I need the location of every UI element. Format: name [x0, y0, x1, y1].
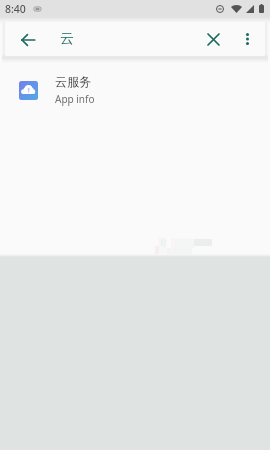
button[interactable]: 云服务	[0, 69, 270, 111]
button[interactable]: More options	[233, 25, 261, 53]
button[interactable]: Back	[14, 26, 42, 54]
staticText: App info	[55, 92, 95, 106]
staticText: 8:40	[5, 2, 26, 16]
staticText: 云	[60, 30, 74, 48]
staticText: 云服务	[55, 74, 91, 89]
button[interactable]: Clear search	[199, 25, 227, 53]
